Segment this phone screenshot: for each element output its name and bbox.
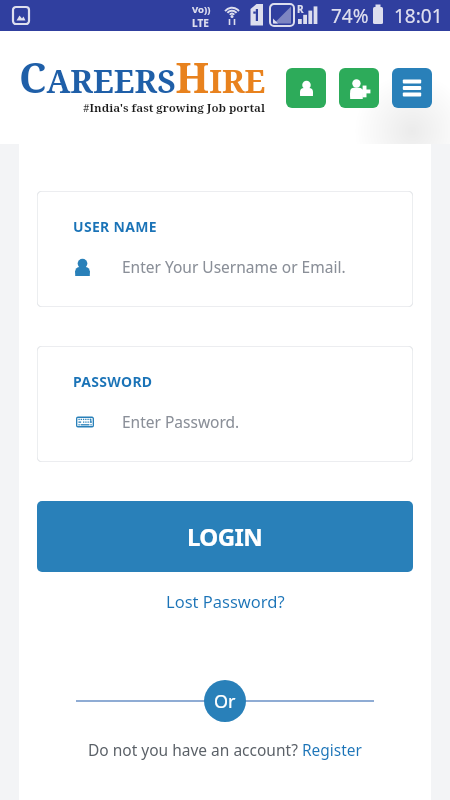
staticText: Lost Password?	[166, 590, 285, 612]
button[interactable]: Menu	[392, 68, 432, 108]
button[interactable]: Profile	[286, 68, 326, 108]
staticText: 18:01	[394, 3, 443, 29]
staticText: LTE	[192, 16, 209, 30]
staticText: Vo))	[192, 3, 211, 16]
button[interactable]: Do not you have an account? Register	[37, 739, 413, 760]
staticText: 74%	[331, 3, 369, 29]
staticText: CAREERSHIRE	[19, 49, 266, 105]
staticText: PASSWORD	[73, 372, 153, 391]
button[interactable]: USER NAME	[37, 191, 413, 307]
staticText: #India's fast growing Job portal	[83, 100, 266, 116]
staticText: Enter Password.	[122, 411, 240, 432]
staticText: Do not you have an account? Register	[88, 739, 362, 760]
button[interactable]: Lost Password?	[37, 590, 413, 612]
button[interactable]: Or	[204, 680, 246, 722]
staticText: R	[297, 2, 304, 16]
staticText: Enter Your Username or Email.	[122, 256, 346, 277]
staticText: LOGIN	[187, 520, 263, 553]
button[interactable]: PASSWORD	[37, 346, 413, 462]
staticText: Or	[214, 689, 236, 714]
staticText: USER NAME	[73, 217, 157, 236]
button[interactable]: LOGIN	[37, 501, 413, 572]
button[interactable]: Register	[339, 68, 379, 108]
